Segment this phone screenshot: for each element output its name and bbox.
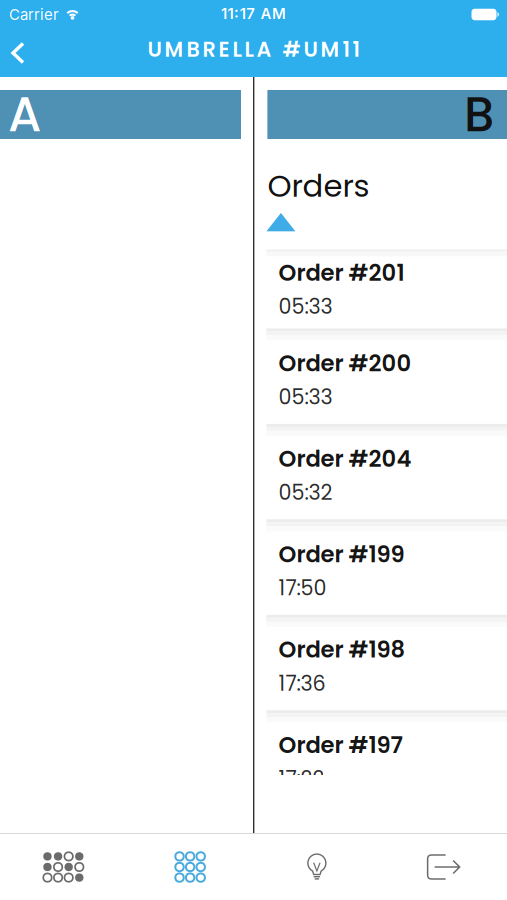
staticText: 05:32 <box>278 478 332 507</box>
staticText: Orders <box>267 164 369 207</box>
button[interactable]: Order #199 <box>254 531 507 615</box>
button[interactable]: Order #200 <box>254 340 507 424</box>
button[interactable]: Machines <box>0 834 127 900</box>
button[interactable]: Order #197 <box>254 722 507 806</box>
button[interactable]: Orders <box>127 834 254 900</box>
staticText: 17:50 <box>278 573 326 602</box>
staticText: B <box>464 81 494 148</box>
button[interactable]: Ideas <box>253 834 380 900</box>
staticText: Order #199 <box>278 538 404 570</box>
button[interactable]: Back <box>0 42 26 65</box>
button[interactable]: Order #204 <box>254 436 507 519</box>
staticText: 11:17 AM <box>221 4 286 23</box>
staticText: 17:36 <box>278 669 325 698</box>
staticText: Order #200 <box>278 347 411 379</box>
staticText: 05:33 <box>278 292 332 321</box>
staticText: Carrier <box>9 5 59 24</box>
staticText: UMBRELLA #UM11 <box>147 35 359 64</box>
staticText: Order #204 <box>278 443 411 475</box>
staticText: Order #201 <box>278 257 404 288</box>
button[interactable]: Sort ascending <box>254 207 295 231</box>
staticText: 05:33 <box>278 382 332 411</box>
staticText: 17:22 <box>278 764 324 793</box>
button[interactable]: Order #201 <box>254 256 507 328</box>
button[interactable]: Log out <box>380 834 507 900</box>
button[interactable]: Order #198 <box>254 627 507 710</box>
staticText: Order #197 <box>278 729 402 761</box>
staticText: A <box>8 81 41 148</box>
staticText: Order #198 <box>278 634 405 665</box>
